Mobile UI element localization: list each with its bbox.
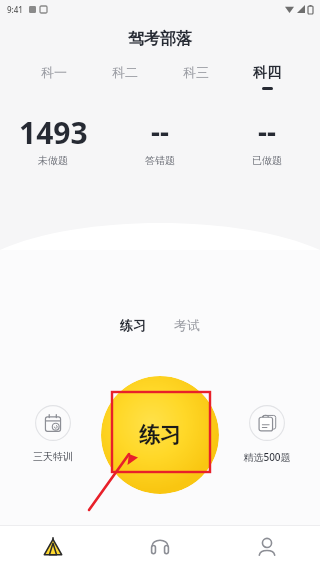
button[interactable]: 练习 [101,376,219,494]
staticText: -- [258,112,276,148]
staticText: 练习 [139,422,181,448]
staticText: 1493 [19,112,88,148]
button[interactable]: 科一 [18,64,89,88]
staticText: 考试 [174,317,200,333]
staticText: 三天特训 [33,450,73,463]
staticText: 练习 [120,317,146,333]
staticText: 驾考部落 [128,29,192,49]
button[interactable]: Home [0,526,106,568]
staticText: 科一 [41,64,67,80]
button[interactable]: 练习 [114,313,152,337]
button[interactable]: 精选500题 [231,405,303,464]
button[interactable]: 科四 [231,64,302,90]
staticText: 精选500题 [243,450,291,464]
button[interactable]: Profile [213,526,320,568]
button[interactable]: 考试 [168,313,206,337]
staticText: 科三 [183,64,209,80]
button[interactable]: 三天特训 [17,405,89,463]
button[interactable]: 科二 [89,64,160,88]
staticText: 科四 [253,64,281,82]
button[interactable]: 科三 [160,64,231,88]
staticText: -- [151,112,169,148]
staticText: 9:41 [7,4,23,15]
staticText: 已做题 [252,154,282,167]
button[interactable]: Audio [106,526,213,568]
staticText: 答错题 [145,154,175,167]
staticText: 科二 [112,64,138,80]
staticText: 未做题 [38,154,68,167]
